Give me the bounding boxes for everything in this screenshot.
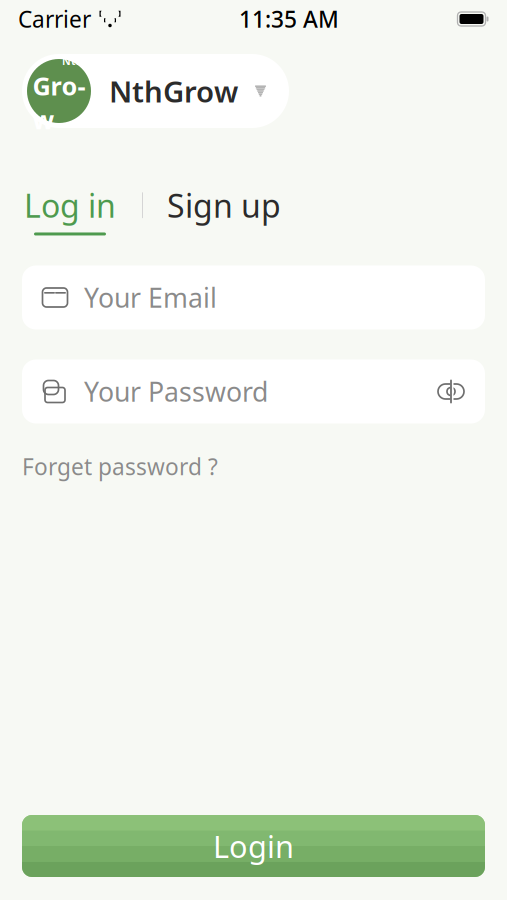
button[interactable]: Login: [22, 815, 485, 877]
button[interactable]: Your Password: [22, 359, 485, 423]
staticText: Sign up: [167, 184, 281, 226]
staticText: Login: [213, 826, 294, 866]
staticText: Carrier: [18, 4, 91, 34]
button[interactable]: Nth: [22, 54, 289, 128]
staticText: Forget password ?: [22, 451, 218, 482]
button[interactable]: Log in: [22, 184, 118, 235]
staticText: NthGrow: [109, 71, 238, 110]
button[interactable]: Your Email: [22, 265, 485, 329]
staticText: 11:35 AM: [239, 4, 339, 34]
staticText: Nth: [62, 54, 83, 68]
staticText: Your Password: [84, 374, 268, 409]
staticText: Grow: [32, 69, 85, 136]
button[interactable]: Sign up: [167, 184, 281, 235]
staticText: Your Email: [84, 280, 217, 315]
staticText: Log in: [24, 184, 116, 226]
button[interactable]: Forget password ?: [22, 451, 218, 482]
